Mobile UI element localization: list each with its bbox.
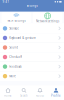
button[interactable]: More [0,72,64,81]
staticText: Notice [35,94,44,97]
staticText: Storage [9,27,19,30]
button[interactable]: Check-off [0,52,64,62]
staticText: More [9,74,16,78]
staticText: Settings [26,4,37,7]
button[interactable]: Notice [32,86,48,100]
button[interactable]: Profile [48,86,64,100]
staticText: Profile [51,94,61,97]
staticText: 9:41 [2,0,9,3]
button[interactable]: Network settings [33,12,62,23]
staticText: Feedback [9,65,21,68]
staticText: Network settings [36,19,59,23]
staticText: Home [4,94,12,97]
staticText: Search [20,94,28,97]
button[interactable]: Sound [0,43,64,52]
button[interactable]: Feedback [0,62,64,71]
button[interactable]: Keyboard & gesture [0,33,64,43]
button[interactable]: Search [16,86,32,100]
staticText: Sound [9,46,18,49]
button[interactable]: Home [0,86,16,100]
staticText: Wi-Fi settings [7,19,25,22]
staticText: Keyboard & gesture [9,36,36,40]
staticText: Check-off [9,55,22,59]
button[interactable]: Storage [0,24,64,33]
button[interactable]: Wi-Fi settings [2,12,31,23]
